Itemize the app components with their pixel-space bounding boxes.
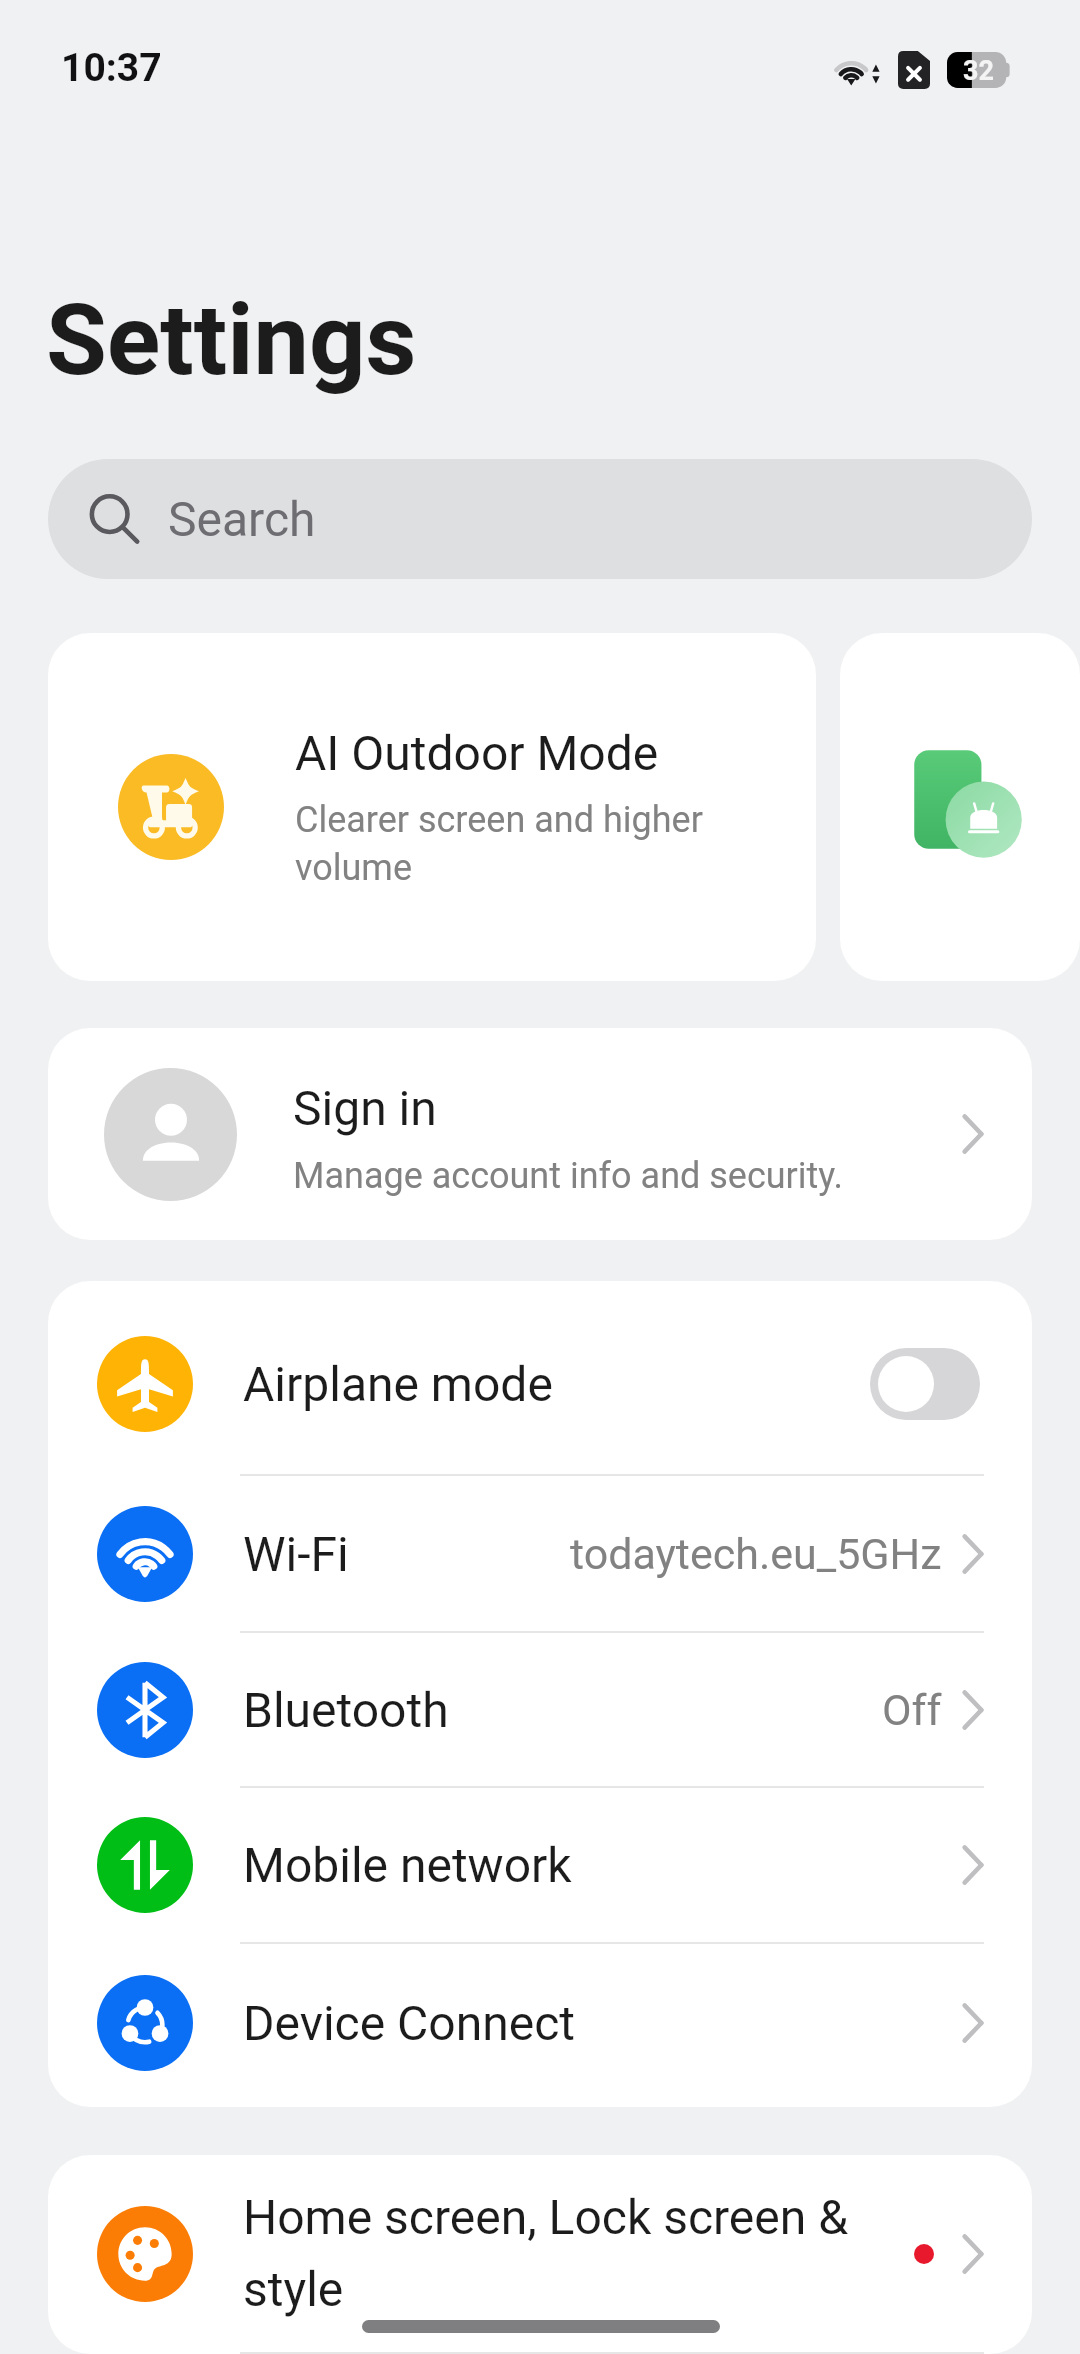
button[interactable]: Bluetooth: [48, 1633, 1032, 1788]
staticText: Wi-Fi: [243, 1526, 570, 1582]
staticText: Search: [168, 491, 316, 547]
staticText: AI Outdoor Mode: [295, 725, 659, 781]
staticText: Clearer screen and higher volume: [295, 799, 715, 889]
button[interactable]: Wi-Fi: [48, 1476, 1032, 1633]
button[interactable]: Search: [48, 459, 1032, 579]
button[interactable]: Home screen, Lock screen & style: [48, 2155, 1032, 2354]
button[interactable]: Device cloning: [840, 633, 1080, 981]
staticText: Mobile network: [243, 1837, 960, 1893]
staticText: 32: [963, 55, 994, 87]
button[interactable]: Airplane mode: [48, 1294, 1032, 1476]
button[interactable]: Airplane mode toggle: [870, 1348, 980, 1420]
staticText: Device Connect: [243, 1995, 960, 2051]
button[interactable]: Device Connect: [48, 1944, 1032, 2101]
staticText: Off: [882, 1685, 942, 1735]
staticText: Airplane mode: [243, 1356, 870, 1412]
staticText: Manage account info and security.: [293, 1155, 843, 1197]
staticText: Sign in: [293, 1080, 437, 1136]
button[interactable]: Mobile network: [48, 1788, 1032, 1944]
staticText: Settings: [46, 282, 417, 398]
button[interactable]: Sign in: [48, 1028, 1032, 1240]
staticText: 10:37: [61, 45, 162, 91]
staticText: Home screen, Lock screen & style: [243, 2189, 914, 2318]
staticText: Bluetooth: [243, 1682, 882, 1738]
staticText: todaytech.eu_5GHz: [570, 1529, 942, 1579]
button[interactable]: AI Outdoor Mode: [48, 633, 816, 981]
